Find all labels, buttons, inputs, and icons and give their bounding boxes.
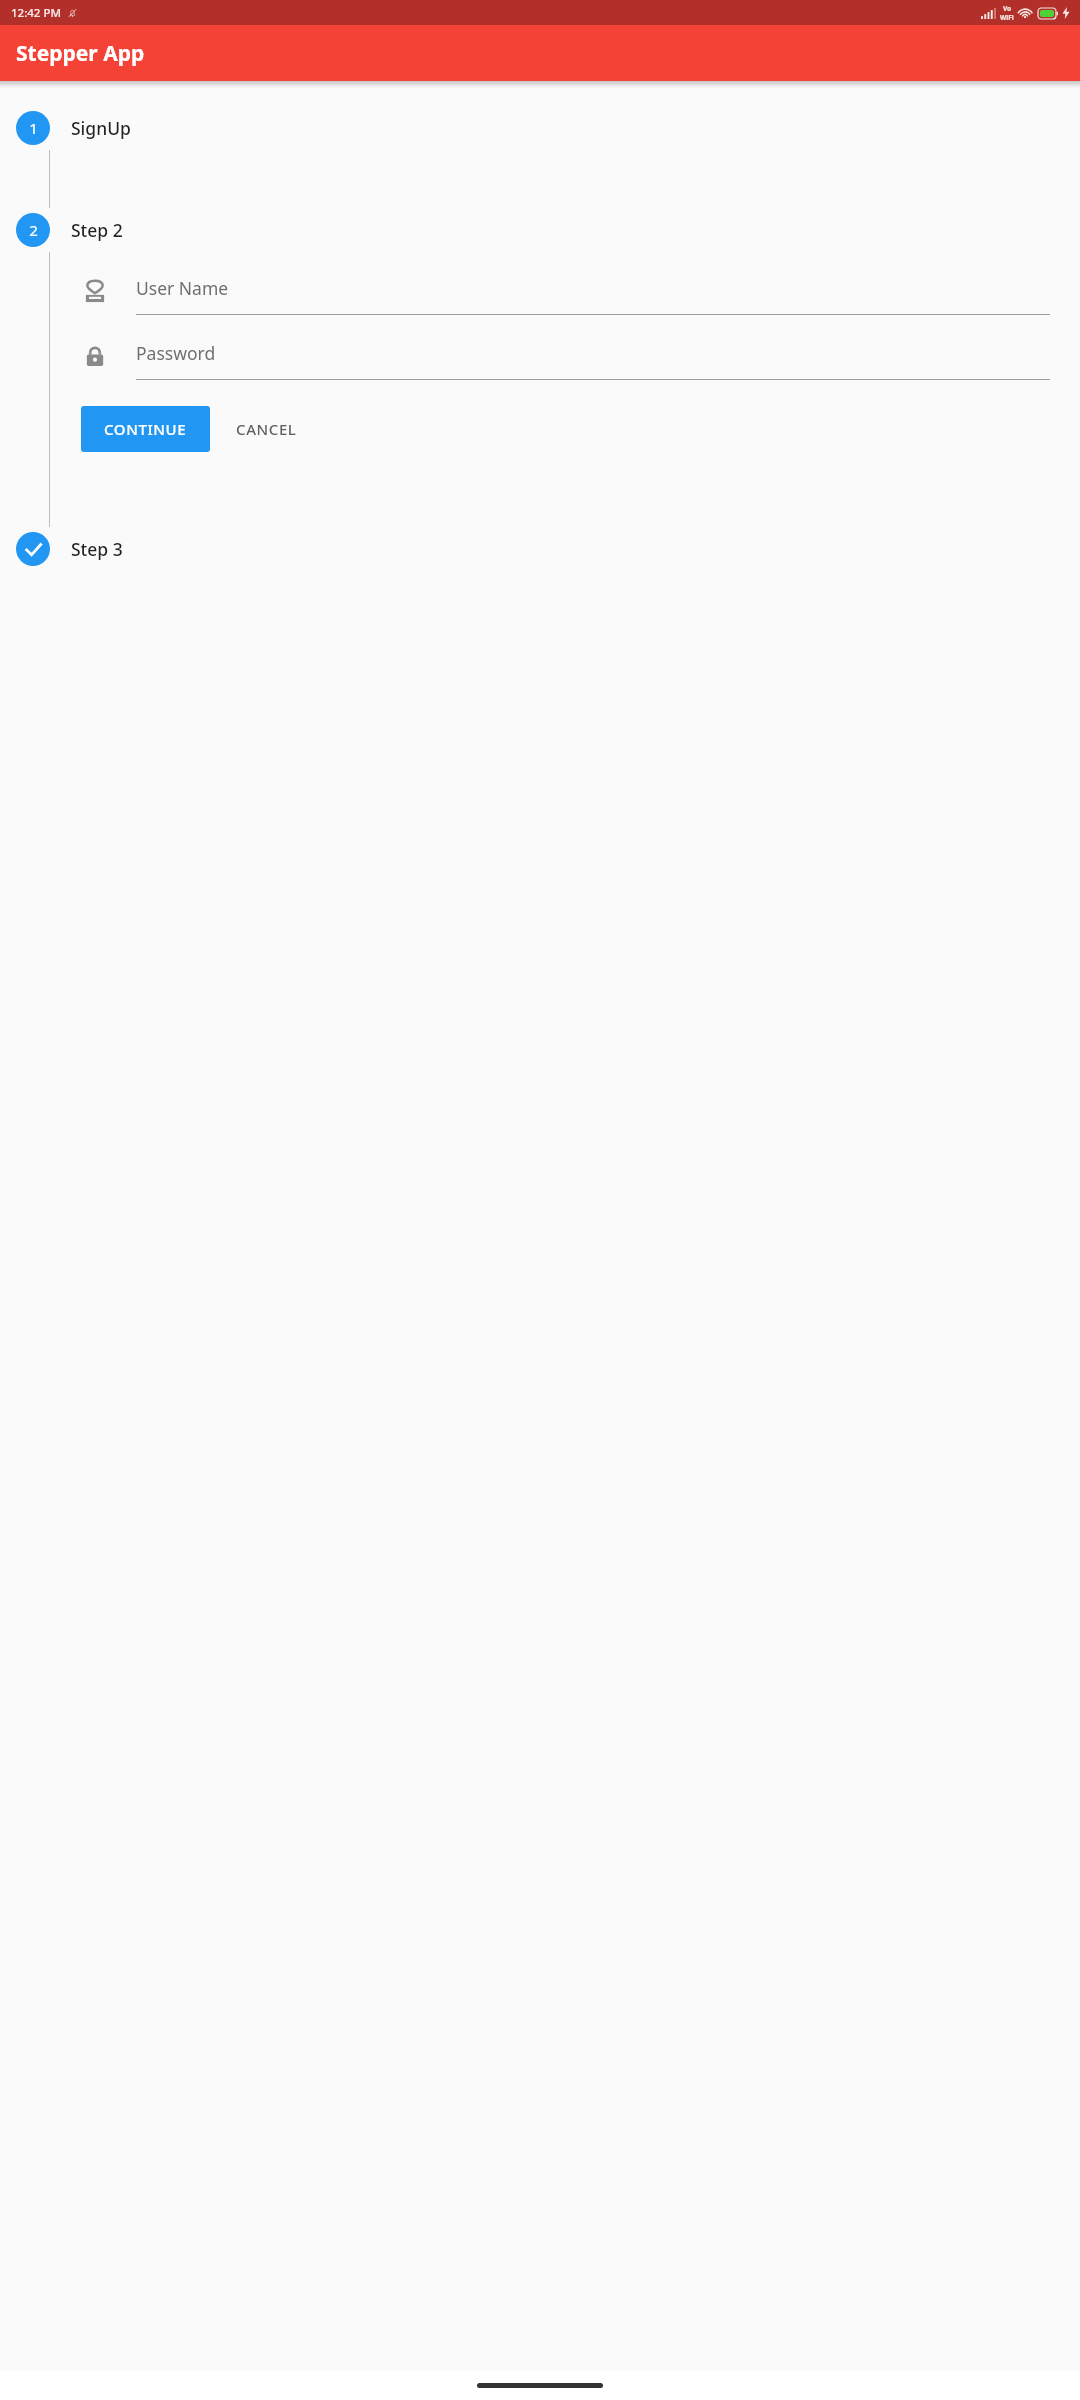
other: Password xyxy=(81,343,109,371)
staticText: Vo xyxy=(1003,4,1012,13)
staticText: 12:42 PM xyxy=(11,5,62,21)
button[interactable]: 2 xyxy=(0,208,1080,252)
staticText: Step 3 xyxy=(71,537,123,561)
staticText: Stepper App xyxy=(16,39,145,68)
staticText: SignUp xyxy=(71,116,131,140)
button[interactable]: Step 3 xyxy=(0,527,1080,571)
button[interactable]: Password xyxy=(136,341,1050,380)
staticText: 2 xyxy=(29,220,38,240)
staticText: Password xyxy=(136,341,216,365)
staticText: Step 2 xyxy=(71,218,123,242)
staticText: CONTINUE xyxy=(104,419,187,439)
other: User xyxy=(81,278,109,306)
button[interactable]: User Name xyxy=(136,276,1050,315)
button[interactable]: CONTINUE xyxy=(81,406,210,452)
button[interactable]: CANCEL xyxy=(220,406,313,452)
staticText: WiFi xyxy=(1000,13,1014,22)
staticText: 1 xyxy=(29,118,38,138)
button[interactable]: 1 xyxy=(0,106,1080,150)
staticText: CANCEL xyxy=(236,419,297,439)
staticText: User Name xyxy=(136,276,229,300)
